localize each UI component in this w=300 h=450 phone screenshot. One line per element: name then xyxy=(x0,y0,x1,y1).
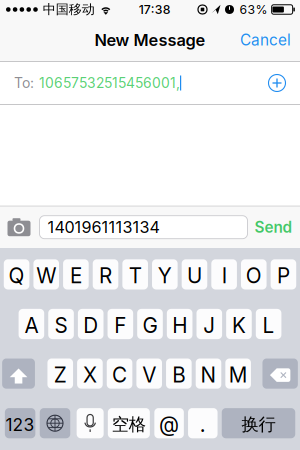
button[interactable]: J xyxy=(196,309,222,339)
staticText: V xyxy=(142,362,156,387)
button[interactable]: G xyxy=(137,309,163,339)
button[interactable]: Shift xyxy=(2,358,35,389)
button[interactable]: O xyxy=(241,259,267,289)
staticText: F xyxy=(114,313,126,338)
button[interactable]: S xyxy=(48,309,74,339)
staticText: S xyxy=(55,313,68,338)
button[interactable]: Delete xyxy=(262,358,298,389)
button[interactable]: 空格 xyxy=(108,408,150,438)
staticText: R xyxy=(99,263,112,288)
staticText: Cancel xyxy=(240,31,291,49)
staticText: 中国移动 xyxy=(43,1,95,18)
button[interactable]: K xyxy=(226,309,252,339)
button[interactable]: Camera xyxy=(7,218,30,236)
button[interactable]: 123 xyxy=(5,408,35,438)
button[interactable]: W xyxy=(33,259,59,289)
button[interactable]: C xyxy=(107,358,132,389)
staticText: G xyxy=(142,313,157,338)
button[interactable]: P xyxy=(271,259,296,289)
staticText: 1401961113134 xyxy=(47,217,159,237)
staticText: I xyxy=(222,263,227,288)
staticText: 10657532515456001, xyxy=(39,75,180,91)
staticText: . xyxy=(200,412,206,437)
button[interactable]: E xyxy=(63,259,89,289)
button[interactable]: D xyxy=(78,309,103,339)
button[interactable]: Z xyxy=(47,358,73,389)
button[interactable]: R xyxy=(93,259,118,289)
staticText: D xyxy=(83,313,98,338)
staticText: J xyxy=(203,313,215,338)
staticText: Q xyxy=(9,263,25,288)
staticText: B xyxy=(172,362,185,387)
staticText: T xyxy=(129,263,142,288)
button[interactable]: L xyxy=(256,309,281,339)
staticText: E xyxy=(70,263,82,288)
button[interactable]: . xyxy=(188,408,218,438)
button[interactable]: I xyxy=(211,259,237,289)
staticText: H xyxy=(172,313,187,338)
button[interactable]: Y xyxy=(152,259,178,289)
button[interactable]: M xyxy=(225,358,251,389)
button[interactable]: Q xyxy=(4,259,29,289)
button[interactable]: B xyxy=(166,358,192,389)
staticText: U xyxy=(187,263,202,288)
button[interactable]: Send xyxy=(247,208,299,246)
staticText: @ xyxy=(159,412,179,437)
button[interactable]: A xyxy=(19,309,44,339)
staticText: C xyxy=(112,362,127,387)
staticText: O xyxy=(246,263,262,288)
staticText: Y xyxy=(158,263,172,288)
button[interactable]: H xyxy=(167,309,192,339)
button[interactable]: X xyxy=(77,358,103,389)
staticText: 17:38 xyxy=(139,2,171,17)
staticText: K xyxy=(232,313,246,338)
button[interactable]: N xyxy=(196,358,221,389)
staticText: P xyxy=(277,263,290,288)
staticText: M xyxy=(229,362,248,387)
button[interactable]: T xyxy=(122,259,148,289)
staticText: 空格 xyxy=(112,414,146,435)
button[interactable]: Dictate xyxy=(77,408,104,438)
button[interactable]: Add contact xyxy=(268,74,286,92)
staticText: Z xyxy=(54,362,67,387)
staticText: Send xyxy=(254,218,292,236)
staticText: 63% xyxy=(239,2,267,17)
button[interactable]: F xyxy=(108,309,133,339)
button[interactable]: U xyxy=(182,259,207,289)
staticText: 换行 xyxy=(241,414,275,435)
staticText: A xyxy=(24,313,38,338)
button[interactable]: Next keyboard xyxy=(40,408,70,438)
button[interactable]: V xyxy=(136,358,162,389)
staticText: L xyxy=(263,313,275,338)
staticText: New Message xyxy=(94,30,205,50)
staticText: To: xyxy=(14,74,34,91)
staticText: 123 xyxy=(6,414,35,435)
button[interactable]: @ xyxy=(154,408,184,438)
button[interactable]: Cancel xyxy=(231,19,300,61)
staticText: N xyxy=(200,362,216,387)
staticText: W xyxy=(36,263,56,288)
button[interactable]: 换行 xyxy=(222,408,295,438)
staticText: X xyxy=(83,362,97,387)
